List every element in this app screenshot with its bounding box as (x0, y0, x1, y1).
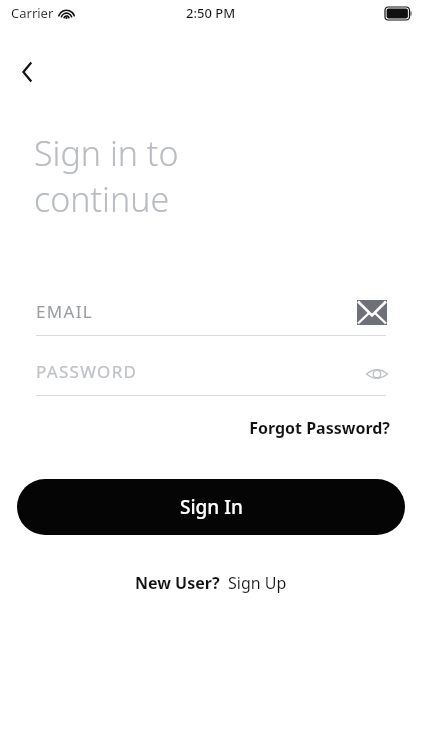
staticText: Carrier (11, 4, 54, 22)
button[interactable]: Sign Up (228, 572, 287, 594)
staticText: PASSWORD (36, 360, 138, 383)
staticText: New User? (135, 572, 220, 594)
button[interactable]: Email (352, 294, 392, 330)
staticText: Forgot Password? (249, 417, 390, 439)
button[interactable]: Sign In (17, 479, 405, 535)
button[interactable]: EMAIL (36, 292, 386, 336)
button[interactable]: PASSWORD (36, 352, 386, 396)
button[interactable]: Back (6, 52, 46, 92)
button[interactable]: Forgot Password? (230, 414, 390, 442)
staticText: Sign in to (34, 130, 179, 176)
staticText: Sign Up (228, 572, 287, 594)
staticText: 2:50 PM (186, 4, 236, 22)
staticText: EMAIL (36, 300, 93, 323)
staticText: Sign In (180, 494, 243, 520)
staticText: continue (34, 176, 170, 222)
button[interactable]: Show password (361, 358, 393, 390)
